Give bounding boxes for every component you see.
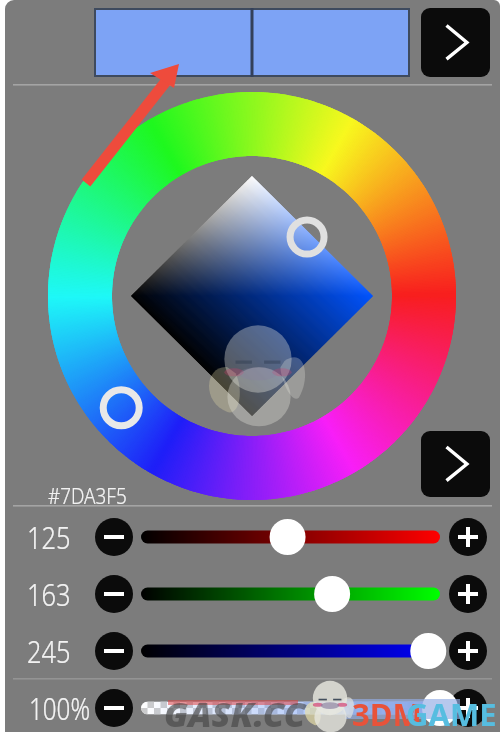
button[interactable]: Increase green bbox=[449, 575, 487, 613]
staticText: 245 bbox=[27, 630, 71, 672]
button[interactable]: Decrease red bbox=[95, 518, 133, 556]
staticText: #7DA3F5 bbox=[48, 482, 127, 511]
button[interactable]: blue slider bbox=[141, 637, 440, 665]
staticText: 3DM bbox=[352, 693, 422, 732]
button[interactable]: Current colour preview bbox=[254, 9, 409, 76]
button[interactable]: red slider bbox=[141, 523, 440, 551]
button[interactable]: green slider bbox=[141, 580, 440, 608]
staticText: 125 bbox=[27, 516, 71, 558]
button[interactable]: Increase red bbox=[449, 518, 487, 556]
button[interactable]: Increase blue bbox=[449, 632, 487, 670]
staticText: 100% bbox=[29, 687, 91, 729]
button[interactable]: New colour preview bbox=[95, 9, 251, 76]
staticText: GASK.CC bbox=[164, 692, 306, 732]
staticText: GAME bbox=[406, 693, 497, 732]
button[interactable]: Decrease alpha bbox=[95, 689, 133, 727]
button[interactable]: Apply colour bbox=[421, 8, 490, 77]
button[interactable]: Colour wheel bbox=[48, 92, 456, 500]
button[interactable]: Increase alpha bbox=[449, 689, 487, 727]
staticText: 163 bbox=[27, 573, 71, 615]
button[interactable]: Confirm colour bbox=[421, 431, 490, 497]
button[interactable]: alpha slider bbox=[141, 694, 440, 722]
button[interactable]: Decrease green bbox=[95, 575, 133, 613]
button[interactable]: Decrease blue bbox=[95, 632, 133, 670]
